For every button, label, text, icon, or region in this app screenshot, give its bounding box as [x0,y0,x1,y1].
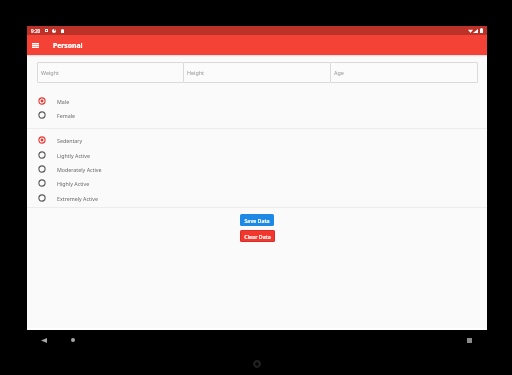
button[interactable]: Sedentary [27,133,487,147]
button[interactable]: Save Data [240,214,274,226]
staticText: Moderately Active [57,166,102,173]
staticText: Personal [53,41,83,50]
staticText: Extremely Active [57,195,98,202]
button[interactable]: Weight [37,62,184,83]
button[interactable]: Female [27,108,487,122]
staticText: Female [57,112,76,119]
staticText: Lightly Active [57,152,90,159]
staticText: Highly Active [57,180,90,187]
button[interactable]: Highly Active [27,176,487,190]
staticText: Clear Data [244,233,271,240]
staticText: Weight [41,69,59,76]
staticText: Save Data [244,217,270,224]
button[interactable]: Extremely Active [27,191,487,205]
staticText: Male [57,98,70,105]
staticText: Age [334,69,344,76]
button[interactable]: Height [183,62,331,83]
button[interactable]: Moderately Active [27,162,487,176]
button[interactable]: Lightly Active [27,148,487,162]
button[interactable]: Male [27,94,487,108]
staticText: 9:20 [31,28,41,34]
button[interactable]: Recents [463,334,475,346]
staticText: Height [187,69,205,76]
staticText: Sedentary [57,137,83,144]
button[interactable]: Menu [28,38,42,52]
button[interactable]: Home [67,334,79,346]
button[interactable]: Age [330,62,478,83]
button[interactable]: Back [38,334,50,346]
button[interactable]: Clear Data [240,230,275,242]
